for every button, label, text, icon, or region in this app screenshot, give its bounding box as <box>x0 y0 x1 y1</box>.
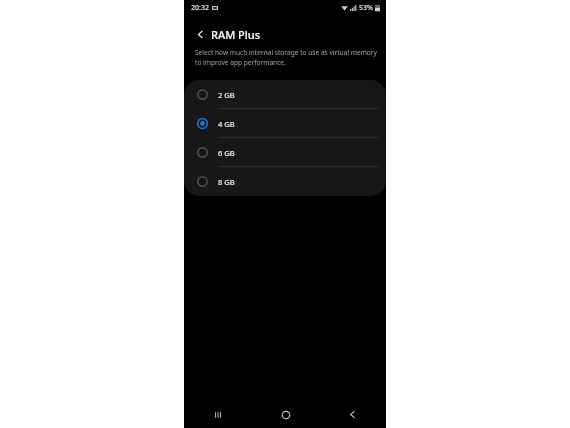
staticText: 8 GB <box>218 177 235 187</box>
staticText: 2 GB <box>218 90 235 100</box>
button[interactable]: Home <box>252 401 319 428</box>
button[interactable]: Back <box>319 401 386 428</box>
button[interactable]: 2 GB <box>184 80 386 109</box>
staticText: 6 GB <box>218 148 235 158</box>
staticText: RAM Plus <box>211 27 261 42</box>
staticText: Select how much internal storage to use … <box>195 48 377 67</box>
button[interactable]: 8 GB <box>184 167 386 196</box>
staticText: 20:32 <box>191 3 209 13</box>
button[interactable]: Navigate up <box>192 26 208 42</box>
button[interactable]: 6 GB <box>184 138 386 167</box>
staticText: 4 GB <box>218 119 235 129</box>
button[interactable]: Recent apps <box>184 401 252 428</box>
button[interactable]: 4 GB <box>184 109 386 138</box>
staticText: 53% <box>359 3 373 13</box>
